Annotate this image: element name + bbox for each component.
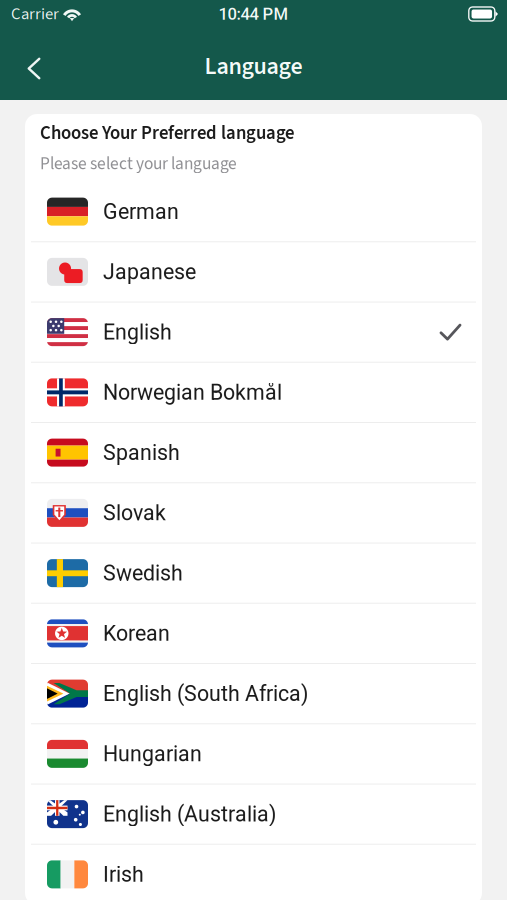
staticText: Korean	[103, 621, 170, 646]
staticText: Swedish	[103, 561, 183, 586]
button[interactable]: Slovak	[25, 483, 482, 542]
staticText: Norwegian Bokmål	[103, 380, 282, 405]
button[interactable]: Swedish	[25, 543, 482, 603]
staticText: Choose Your Preferred language	[40, 120, 294, 146]
staticText: Language	[204, 49, 302, 84]
staticText: English	[103, 320, 172, 345]
staticText: Irish	[103, 862, 144, 887]
button[interactable]: Korean	[25, 604, 482, 663]
button[interactable]: Irish	[25, 845, 482, 900]
staticText: Hungarian	[103, 741, 202, 766]
staticText: Japanese	[103, 259, 196, 284]
staticText: Please select your language	[40, 151, 237, 176]
button[interactable]: Hungarian	[25, 724, 482, 783]
button[interactable]: German	[25, 182, 482, 241]
staticText: Spanish	[103, 440, 180, 465]
button[interactable]: Japanese	[25, 242, 482, 301]
staticText: 10:44 PM	[218, 4, 288, 24]
staticText: Carrier	[11, 2, 59, 26]
button[interactable]: English	[25, 302, 482, 362]
button[interactable]: Back	[11, 36, 57, 91]
staticText: English (South Africa)	[103, 681, 308, 706]
button[interactable]: English (South Africa)	[25, 664, 482, 723]
button[interactable]: English (Australia)	[25, 784, 482, 844]
staticText: English (Australia)	[103, 802, 276, 827]
staticText: Slovak	[103, 500, 166, 525]
staticText: German	[103, 199, 179, 224]
button[interactable]: Norwegian Bokmål	[25, 363, 482, 422]
button[interactable]: Spanish	[25, 423, 482, 482]
